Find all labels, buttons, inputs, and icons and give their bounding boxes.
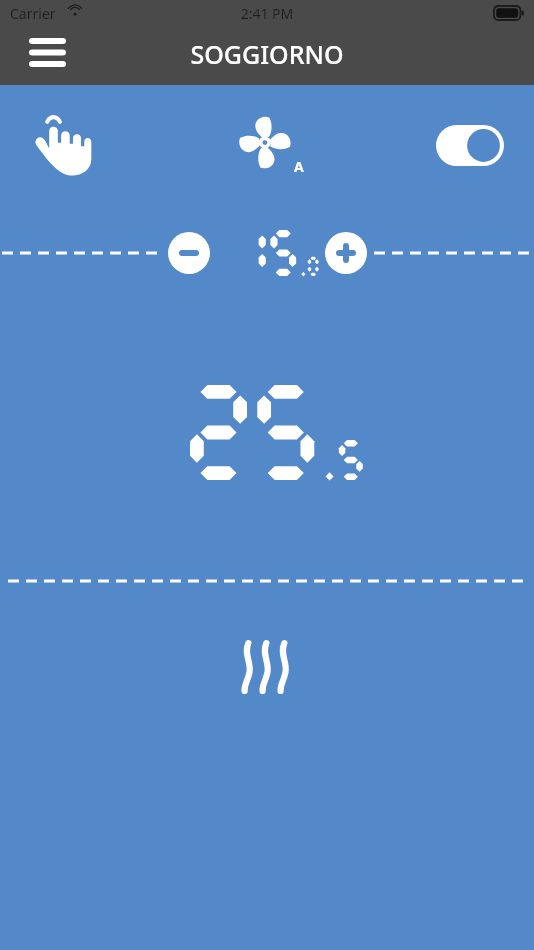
button[interactable]: Heating mode <box>228 632 306 702</box>
button[interactable]: Menu <box>22 33 72 71</box>
button[interactable]: Decrease temperature <box>168 232 210 274</box>
button[interactable]: Manual mode <box>22 103 97 187</box>
staticText: A <box>294 157 304 176</box>
staticText: 2:41 PM <box>0 4 534 23</box>
staticText: Carrier <box>10 4 56 23</box>
button[interactable]: Fan speed auto <box>228 104 310 186</box>
button[interactable]: Power toggle <box>432 120 508 170</box>
button[interactable]: Increase temperature <box>325 232 367 274</box>
staticText: SOGGIORNO <box>0 37 534 71</box>
